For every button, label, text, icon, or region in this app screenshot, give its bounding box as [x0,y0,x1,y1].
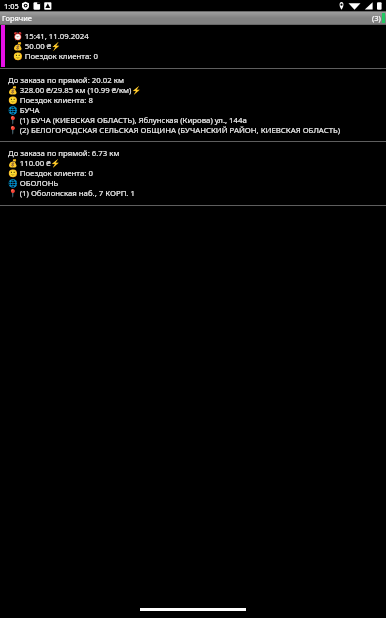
button[interactable]: ⏰ 15:41, 11.09.2024 [0,25,386,69]
button[interactable]: Горячие [0,11,386,25]
staticText: 📍 (1) Оболонская наб., 7 КОРП. 1 [8,188,135,198]
staticText: Горячие [2,13,32,23]
other: Home [0,594,386,618]
staticText: 🙂 Поездок клиента: 0 [13,51,98,61]
staticText: 🙂 Поездок клиента: 0 [8,168,93,178]
staticText: 🌐 БУЧА [8,105,40,115]
staticText: 💰 328.00 ₴/29.85 км (10.99 ₴/км)⚡ [8,85,142,95]
staticText: 💰 110.00 ₴⚡ [8,158,61,168]
button[interactable]: До заказа по прямой: 20.02 км [0,69,386,142]
staticText: ⏰ 15:41, 11.09.2024 [13,31,89,41]
staticText: (3) [372,13,381,23]
staticText: 📍 (1) БУЧА (КИЕВСКАЯ ОБЛАСТЬ), Яблунская… [8,115,247,125]
button[interactable]: До заказа по прямой: 6.73 км [0,142,386,206]
staticText: До заказа по прямой: 20.02 км [8,75,124,85]
staticText: До заказа по прямой: 6.73 км [8,148,120,158]
staticText: 📍 (2) БЕЛОГОРОДСКАЯ СЕЛЬСКАЯ ОБЩИНА (БУЧ… [8,125,341,135]
staticText: 1:05 [4,1,19,11]
staticText: 🙂 Поездок клиента: 8 [8,95,93,105]
staticText: 🌐 ОБОЛОНЬ [8,178,59,188]
staticText: 💰 50.00 ₴⚡ [13,41,61,51]
